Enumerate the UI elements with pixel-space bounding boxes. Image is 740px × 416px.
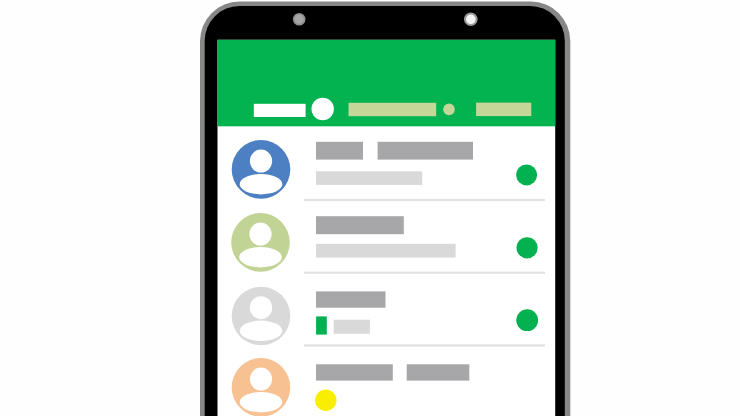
button[interactable] bbox=[0, 0, 740, 416]
